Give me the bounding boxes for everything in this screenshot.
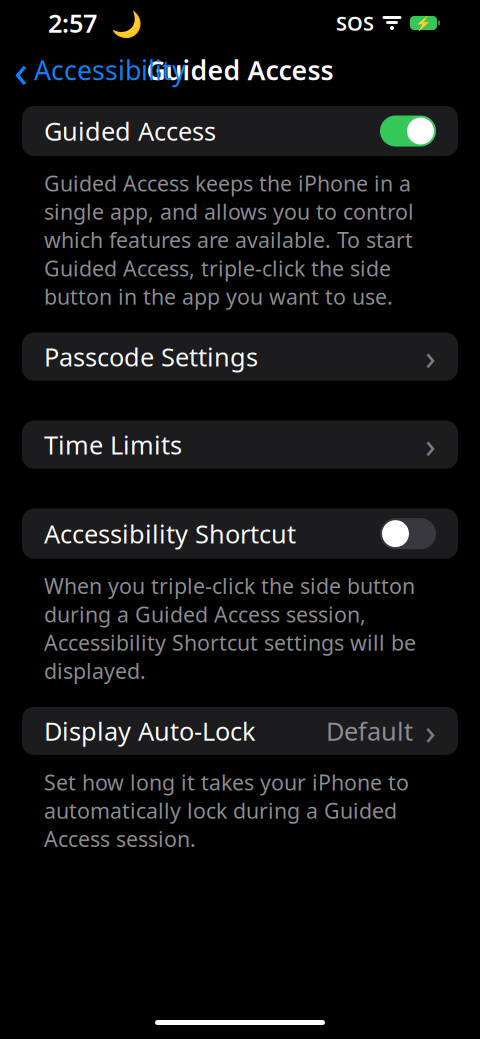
staticText: › [425,334,436,380]
staticText: Default [326,714,413,748]
staticText: Display Auto-Lock [44,714,256,748]
staticText: Passcode Settings [44,340,258,373]
staticText: SOS [336,10,374,36]
staticText: Guided Access [44,114,216,148]
button[interactable]: Time Limits [0,421,480,469]
staticText: Set how long it takes your iPhone to aut… [44,768,409,853]
button[interactable]: Display Auto-Lock [0,707,480,755]
staticText: ⚡ [415,15,432,31]
staticText: › [425,422,436,468]
staticText: › [425,708,436,754]
staticText: Guided Access [146,52,333,88]
button[interactable]: Accessibility Shortcut [0,509,480,559]
button[interactable]: Passcode Settings [0,333,480,381]
staticText: 2:57 🌙 [48,6,143,40]
staticText: Accessibility [34,52,186,88]
staticText: When you triple-click the side button du… [44,572,416,685]
staticText: Guided Access keeps the iPhone in a sing… [44,169,414,311]
button[interactable]: Guided Access [0,106,480,156]
staticText: Time Limits [44,428,182,461]
staticText: Accessibility Shortcut [44,517,296,550]
button[interactable]: ‹ [0,36,186,104]
staticText: ‹ [14,40,28,100]
